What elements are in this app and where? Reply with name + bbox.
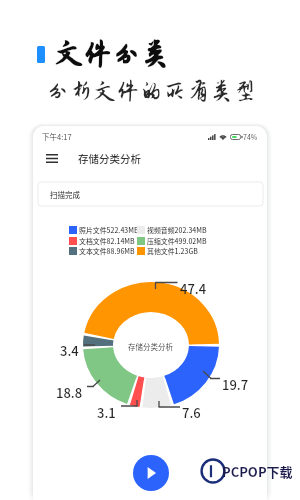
- staticText: 存储分类分析: [128, 341, 173, 352]
- staticText: 视频音频202.34MB: [147, 225, 207, 235]
- staticText: PCPOP下载: [222, 462, 293, 481]
- staticText: 3.4: [60, 341, 79, 360]
- staticText: 文档文件82.14MB: [79, 236, 135, 246]
- staticText: 7.6: [182, 403, 201, 422]
- staticText: 扫描完成: [50, 189, 80, 200]
- staticText: 47.4: [180, 279, 207, 298]
- button[interactable]: 扫描完成: [38, 182, 263, 206]
- staticText: 分析文件的所有类型: [46, 78, 257, 104]
- staticText: 照片文件522.43MB: [79, 225, 139, 235]
- staticText: 其他文件1.23GB: [147, 246, 198, 256]
- staticText: 下午4:17: [42, 131, 72, 142]
- staticText: 19.7: [222, 375, 249, 394]
- staticText: 存储分类分析: [78, 151, 141, 166]
- staticText: 3.1: [97, 403, 116, 422]
- button[interactable]: Open navigation menu: [41, 147, 63, 169]
- staticText: 74%: [243, 132, 258, 142]
- staticText: 18.8: [56, 383, 83, 402]
- staticText: 文件分类: [54, 39, 170, 71]
- button[interactable]: Start scan: [133, 455, 169, 491]
- staticText: 文本文件88.96MB: [79, 246, 135, 256]
- staticText: 压缩文件499.02MB: [147, 236, 207, 246]
